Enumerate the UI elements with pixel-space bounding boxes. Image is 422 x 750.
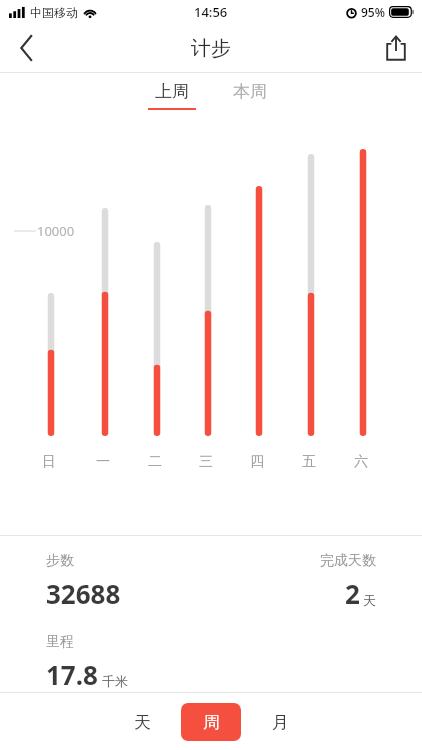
staticText: 周 [203, 712, 220, 733]
staticText: 三 [199, 453, 213, 471]
button[interactable]: 上周 [133, 73, 211, 117]
button[interactable]: Share [370, 24, 422, 72]
staticText: 二 [148, 453, 162, 471]
staticText: 上周 [155, 81, 189, 102]
button[interactable]: 天 [112, 703, 172, 741]
staticText: 计步 [191, 36, 231, 61]
staticText: 中国移动 [30, 5, 78, 20]
staticText: 六 [354, 453, 368, 471]
staticText: 32688 [46, 576, 121, 611]
staticText: 四 [250, 453, 264, 471]
staticText: 14:56 [194, 3, 228, 21]
staticText: 95% [361, 4, 385, 20]
staticText: 天 [363, 592, 376, 608]
button[interactable]: Back [0, 24, 52, 72]
button[interactable]: 周 [181, 703, 241, 741]
staticText: 千米 [102, 673, 128, 689]
staticText: 一 [96, 453, 110, 471]
button[interactable]: 月 [250, 703, 310, 741]
staticText: 月 [272, 712, 289, 733]
staticText: 五 [302, 453, 316, 471]
staticText: 日 [42, 453, 56, 471]
staticText: 天 [134, 712, 151, 733]
button[interactable]: 本周 [211, 73, 289, 117]
staticText: 10000 [37, 222, 75, 240]
staticText: 17.8 [46, 657, 98, 692]
staticText: 本周 [233, 81, 267, 102]
staticText: 完成天数 [320, 552, 376, 570]
staticText: 步数 [46, 552, 74, 570]
staticText: 里程 [46, 633, 74, 651]
staticText: 2 [345, 576, 360, 611]
